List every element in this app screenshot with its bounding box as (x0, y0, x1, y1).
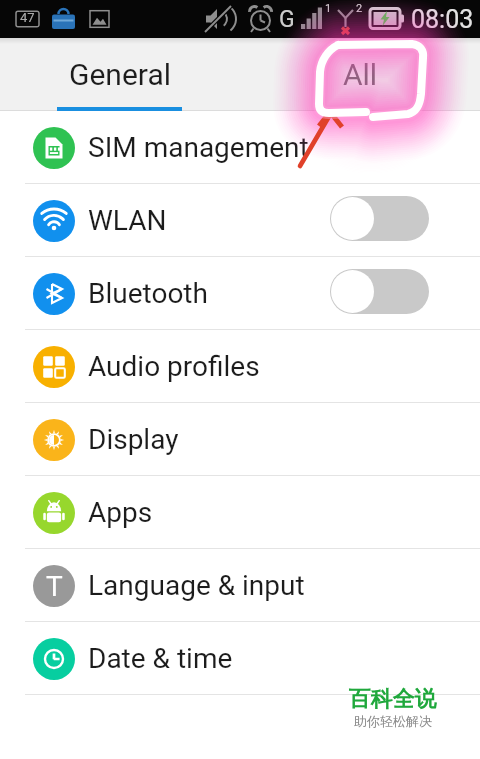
button[interactable]: Audio profiles (0, 330, 480, 403)
staticText: Date & time (88, 642, 233, 675)
staticText: 百科全说 (349, 685, 437, 713)
staticText: G (279, 6, 295, 33)
staticText: 1 (325, 2, 332, 15)
staticText: All (343, 57, 378, 92)
button[interactable]: SIM management (0, 111, 480, 184)
staticText: 2 (356, 2, 363, 15)
button[interactable]: WLAN (0, 184, 480, 257)
staticText: General (69, 57, 172, 92)
staticText: Apps (88, 496, 153, 529)
staticText: T (46, 570, 63, 603)
button[interactable]: Display (0, 403, 480, 476)
button[interactable]: Date & time (0, 622, 480, 695)
button[interactable]: General (0, 38, 240, 111)
button[interactable]: Toggle WLAN (330, 196, 429, 241)
staticText: WLAN (88, 204, 167, 237)
staticText: 08:03 (411, 5, 474, 34)
staticText: Display (88, 423, 179, 456)
button[interactable]: Bluetooth (0, 257, 480, 330)
staticText: 助你轻松解决 (354, 713, 432, 729)
staticText: 47 (20, 10, 35, 25)
button[interactable]: T (0, 549, 480, 622)
button[interactable]: Toggle Bluetooth (330, 269, 429, 314)
button[interactable]: Apps (0, 476, 480, 549)
staticText: SIM management (88, 131, 309, 164)
staticText: Language & input (88, 569, 305, 602)
button[interactable]: All (240, 38, 480, 111)
staticText: Bluetooth (88, 277, 208, 310)
staticText: Audio profiles (88, 350, 260, 383)
